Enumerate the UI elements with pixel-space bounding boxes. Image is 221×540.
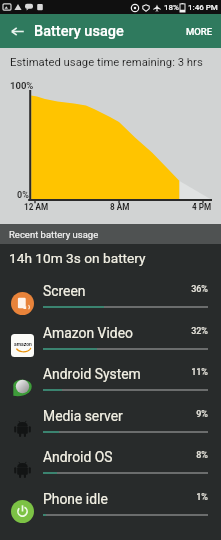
staticText: Battery usage [34, 23, 124, 40]
button[interactable]: Media server [0, 409, 221, 451]
staticText: 11% [0, 367, 208, 378]
button[interactable]: Back [0, 14, 34, 48]
staticText: amazon [14, 341, 32, 347]
staticText: 0% [17, 190, 29, 201]
button[interactable]: Screen [0, 284, 221, 326]
staticText: 4 PM [192, 202, 212, 212]
staticText: Recent battery usage [9, 229, 99, 240]
staticText: 18% [164, 3, 179, 12]
button[interactable]: Phone idle [0, 492, 221, 534]
staticText: 12 AM [24, 202, 49, 212]
staticText: Android OS [43, 449, 113, 465]
staticText: 1% [0, 492, 208, 503]
staticText: 8% [0, 450, 208, 461]
staticText: Amazon Video [43, 325, 133, 341]
staticText: 9% [0, 409, 208, 420]
staticText: 32% [0, 326, 208, 337]
button[interactable]: MORE [178, 14, 221, 48]
staticText: Phone idle [43, 491, 108, 507]
button[interactable]: Android OS [0, 450, 221, 492]
staticText: 100% [10, 80, 34, 91]
staticText: 8 AM [110, 202, 130, 212]
staticText: MORE [186, 26, 213, 37]
staticText: Android System [43, 366, 141, 382]
button[interactable]: Android System [0, 367, 221, 409]
staticText: Media server [43, 408, 123, 424]
staticText: Screen [43, 283, 86, 299]
staticText: 1:46 PM [188, 3, 218, 12]
button[interactable]: amazon [0, 326, 221, 368]
staticText: 36% [0, 284, 208, 295]
staticText: Estimated usage time remaining: 3 hrs [10, 56, 203, 69]
staticText: 14h 10m 3s on battery [9, 250, 146, 266]
